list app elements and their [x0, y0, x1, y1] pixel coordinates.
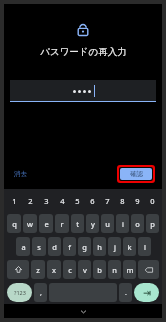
staticText: r — [60, 219, 64, 229]
staticText: e — [44, 219, 49, 229]
staticText: 消去 — [14, 170, 27, 178]
staticText: b — [97, 265, 102, 275]
staticText: t — [76, 219, 79, 229]
staticText: . — [125, 288, 127, 298]
button[interactable]: Enter — [134, 283, 159, 302]
staticText: y — [91, 219, 95, 229]
staticText: k — [127, 242, 132, 252]
button[interactable]: h — [93, 237, 106, 256]
staticText: a — [21, 242, 26, 252]
button[interactable]: o — [131, 214, 144, 233]
staticText: 4 — [60, 196, 65, 206]
staticText: o — [135, 219, 140, 229]
staticText: 6 — [90, 196, 95, 206]
staticText: 7 — [105, 196, 110, 206]
button[interactable]: l — [138, 237, 151, 256]
button[interactable]: Backspace — [138, 260, 159, 279]
staticText: q — [12, 219, 17, 229]
staticText: 2 — [28, 196, 33, 206]
staticText: 8 — [120, 196, 125, 206]
staticText: 1 — [12, 196, 17, 206]
staticText: v — [83, 265, 87, 275]
staticText: z — [36, 265, 40, 275]
button[interactable]: 1 — [7, 190, 21, 211]
staticText: j — [114, 242, 116, 252]
button[interactable]: x — [47, 260, 61, 279]
button[interactable]: g — [78, 237, 91, 256]
button[interactable]: m — [123, 260, 136, 279]
button[interactable]: , — [34, 283, 47, 302]
staticText: s — [37, 242, 41, 252]
button[interactable]: 7 — [101, 190, 114, 211]
staticText: m — [126, 265, 134, 275]
button[interactable]: 5 — [71, 190, 84, 211]
button[interactable]: t — [71, 214, 84, 233]
staticText: l — [144, 242, 146, 252]
staticText: x — [52, 265, 56, 275]
button[interactable]: . — [119, 283, 132, 302]
other: Lock — [75, 22, 91, 38]
button[interactable]: k — [123, 237, 136, 256]
staticText: w — [27, 219, 33, 229]
button[interactable]: e — [39, 214, 53, 233]
button[interactable]: 9 — [131, 190, 144, 211]
button[interactable]: a — [16, 237, 30, 256]
button[interactable]: r — [55, 214, 69, 233]
button[interactable]: Hide keyboard — [76, 304, 90, 318]
staticText: 確認 — [130, 170, 143, 178]
staticText: 5 — [75, 196, 80, 206]
button[interactable]: i — [116, 214, 129, 233]
staticText: f — [68, 242, 71, 252]
button[interactable]: z — [31, 260, 45, 279]
button[interactable]: w — [23, 214, 37, 233]
button[interactable]: c — [63, 260, 76, 279]
staticText: パスワードの再入力 — [40, 46, 127, 58]
staticText: n — [112, 265, 117, 275]
staticText: c — [68, 265, 72, 275]
button[interactable]: f — [63, 237, 76, 256]
button[interactable]: 0 — [146, 190, 159, 211]
button[interactable]: 3 — [39, 190, 53, 211]
staticText: d — [52, 242, 57, 252]
button[interactable]: 確認 — [120, 168, 152, 180]
staticText: u — [105, 219, 110, 229]
staticText: 0 — [150, 196, 155, 206]
button[interactable]: j — [108, 237, 121, 256]
button[interactable]: 6 — [86, 190, 99, 211]
button[interactable]: 4 — [55, 190, 69, 211]
staticText: i — [122, 219, 124, 229]
staticText: p — [150, 219, 155, 229]
button[interactable]: s — [32, 237, 46, 256]
button[interactable]: b — [93, 260, 106, 279]
staticText: 9 — [135, 196, 140, 206]
staticText: , — [40, 288, 42, 298]
button[interactable]: q — [7, 214, 21, 233]
button[interactable]: ?123 — [7, 283, 32, 302]
button[interactable]: y — [86, 214, 99, 233]
button[interactable]: Shift — [7, 260, 29, 279]
staticText: h — [97, 242, 102, 252]
button[interactable]: v — [78, 260, 91, 279]
button[interactable]: u — [101, 214, 114, 233]
button[interactable]: n — [108, 260, 121, 279]
button[interactable]: p — [146, 214, 159, 233]
button[interactable]: d — [48, 237, 61, 256]
button[interactable]: 8 — [116, 190, 129, 211]
button[interactable]: 2 — [23, 190, 37, 211]
staticText: ?123 — [14, 289, 26, 296]
button[interactable] — [10, 80, 156, 102]
staticText: g — [82, 242, 87, 252]
button[interactable]: 消去 — [12, 168, 29, 180]
staticText: 3 — [44, 196, 49, 206]
